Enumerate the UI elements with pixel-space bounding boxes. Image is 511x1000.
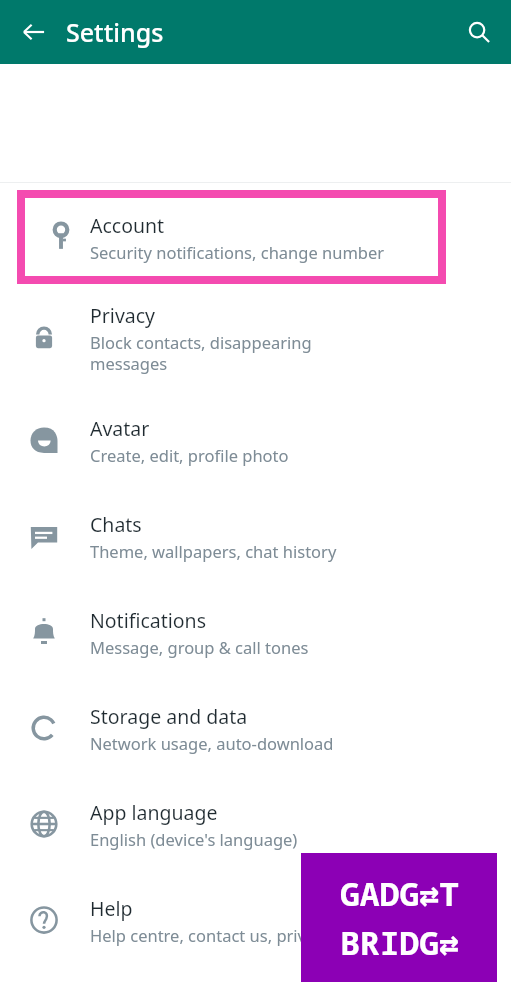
button[interactable]: Notifications bbox=[0, 584, 511, 680]
staticText: Chats bbox=[90, 511, 142, 538]
staticText: Create, edit, profile photo bbox=[90, 444, 289, 466]
button[interactable]: Chats bbox=[0, 488, 511, 584]
staticText: Notifications bbox=[90, 607, 206, 634]
staticText: Block contacts, disappearing messages bbox=[90, 331, 312, 375]
button[interactable]: Account bbox=[17, 190, 446, 284]
staticText: Help centre, contact us, privacy policy bbox=[90, 924, 381, 946]
staticText: Avatar bbox=[90, 415, 150, 442]
staticText: Account bbox=[90, 212, 165, 239]
staticText: English (device's language) bbox=[90, 828, 298, 850]
button[interactable]: Back bbox=[10, 8, 58, 56]
staticText: Storage and data bbox=[90, 703, 248, 730]
staticText: Theme, wallpapers, chat history bbox=[90, 540, 337, 562]
staticText: Help bbox=[90, 895, 133, 922]
staticText: App language bbox=[90, 799, 218, 826]
staticText: Privacy bbox=[90, 302, 156, 329]
staticText: Network usage, auto-download bbox=[90, 732, 334, 754]
button[interactable]: Storage and data bbox=[0, 680, 511, 776]
staticText: Message, group & call tones bbox=[90, 636, 309, 658]
staticText: BRIDG⇄ bbox=[340, 920, 459, 965]
staticText: GADG⇄T bbox=[340, 871, 459, 916]
button[interactable]: Avatar bbox=[0, 392, 511, 488]
staticText: Settings bbox=[66, 15, 164, 49]
staticText: Security notifications, change number bbox=[90, 241, 385, 263]
button[interactable]: Help bbox=[0, 872, 511, 968]
button[interactable]: Privacy bbox=[0, 284, 511, 392]
button[interactable]: App language bbox=[0, 776, 511, 872]
button[interactable]: Search bbox=[455, 8, 503, 56]
